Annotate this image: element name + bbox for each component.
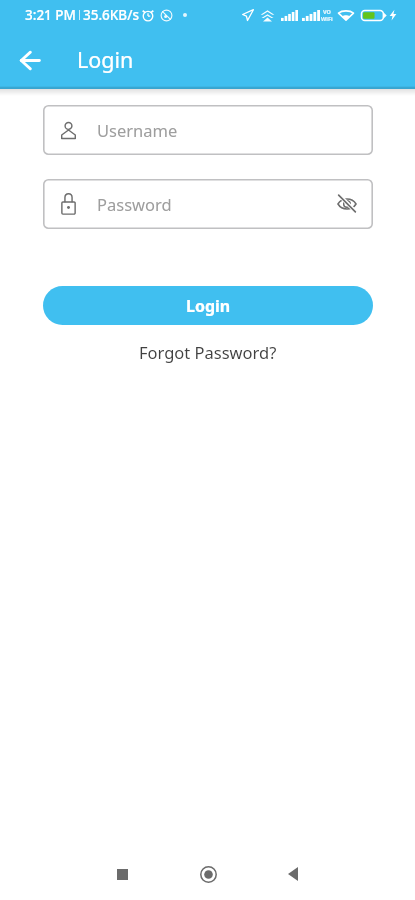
button[interactable]: Forgot Password? (131, 337, 285, 367)
button[interactable]: Login (43, 286, 373, 325)
staticText: Password (97, 193, 172, 215)
staticText: 3:21 PM (25, 6, 76, 24)
staticText: 35.6KB/s (83, 6, 139, 24)
button[interactable]: Home (185, 851, 231, 897)
staticText: VO (323, 8, 331, 15)
staticText: WiFi (321, 15, 333, 22)
staticText: Forgot Password? (139, 341, 277, 363)
button[interactable]: Password (43, 179, 373, 229)
button[interactable]: Back (270, 851, 316, 897)
button[interactable]: Recents (99, 851, 145, 897)
staticText: Username (97, 119, 178, 141)
button[interactable]: Back (11, 41, 49, 79)
staticText: Login (186, 295, 231, 317)
button[interactable]: Username (43, 105, 373, 155)
staticText: Login (77, 45, 134, 74)
